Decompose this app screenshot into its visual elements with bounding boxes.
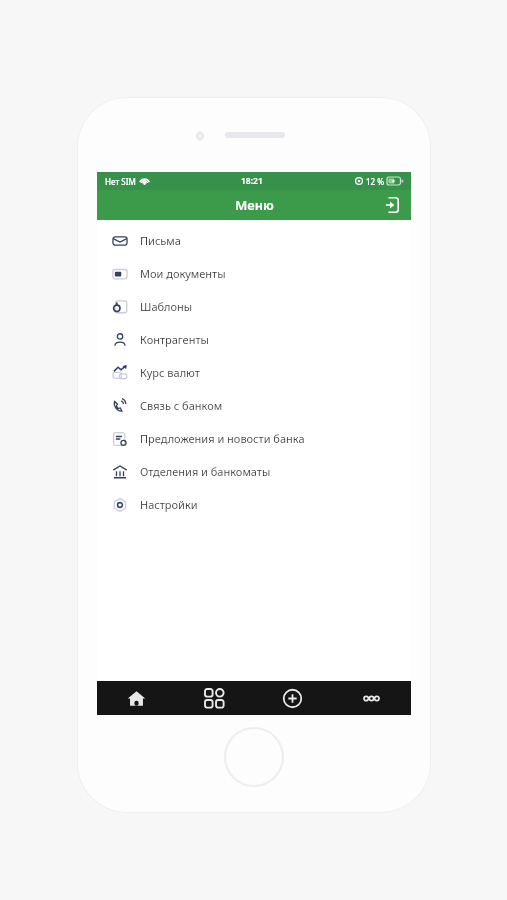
button[interactable]: Контрагенты [97, 323, 411, 356]
button[interactable]: Разделы [175, 681, 253, 715]
button[interactable]: Отделения и банкоматы [97, 455, 411, 488]
button[interactable]: Мои документы [97, 257, 411, 290]
button[interactable]: Курс валют [97, 356, 411, 389]
button[interactable]: Связь с банком [97, 389, 411, 422]
staticText: Нет SIM [105, 176, 136, 187]
staticText: Контрагенты [140, 332, 209, 347]
button[interactable]: Настройки [97, 488, 411, 521]
button[interactable]: Создать [253, 681, 332, 715]
button[interactable]: Ещё [332, 681, 411, 715]
staticText: Предложения и новости банка [140, 431, 305, 446]
staticText: Письма [140, 233, 181, 248]
staticText: Связь с банком [140, 398, 223, 413]
button[interactable]: Выход [379, 193, 403, 217]
staticText: Отделения и банкоматы [140, 464, 271, 479]
staticText: 12 % [366, 176, 385, 187]
staticText: Меню [235, 196, 274, 214]
staticText: Мои документы [140, 266, 226, 281]
button[interactable]: Шаблоны [97, 290, 411, 323]
staticText: Курс валют [140, 365, 200, 380]
staticText: Шаблоны [140, 299, 193, 314]
button[interactable]: Предложения и новости банка [97, 422, 411, 455]
button[interactable]: Письма [97, 224, 411, 257]
button[interactable]: Главная [97, 681, 175, 715]
staticText: 18:21 [241, 175, 263, 187]
staticText: Настройки [140, 497, 198, 512]
